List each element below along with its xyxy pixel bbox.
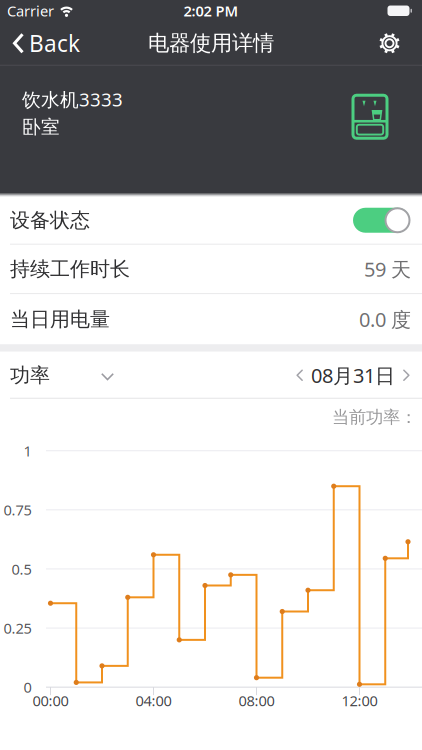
staticText: 0.5	[11, 559, 31, 579]
staticText: 1	[23, 441, 31, 460]
staticText: 12:00	[341, 691, 377, 710]
staticText: 0.25	[3, 618, 31, 638]
staticText: 持续工作时长	[10, 257, 130, 281]
staticText: 59 天	[364, 256, 411, 282]
staticText: 2:02 PM	[183, 1, 238, 20]
staticText: 00:00	[32, 691, 68, 710]
staticText: 电器使用详情	[148, 30, 274, 56]
button[interactable]: 选择数据类型	[10, 363, 114, 388]
staticText: 0.75	[3, 500, 31, 520]
staticText: 0	[23, 677, 31, 697]
button[interactable]: Back	[13, 28, 80, 58]
staticText: 设备状态	[10, 208, 90, 233]
staticText: 04:00	[135, 691, 171, 710]
staticText: 卧室	[22, 115, 60, 138]
button[interactable]: 选择日期	[306, 362, 400, 389]
staticText: 08月31日	[311, 362, 395, 389]
button[interactable]: 设备状态开关	[353, 208, 410, 233]
staticText: 饮水机3333	[22, 87, 123, 112]
staticText: 当日用电量	[10, 307, 110, 332]
button[interactable]: 后一天	[400, 366, 412, 384]
button[interactable]: 前一天	[294, 366, 306, 384]
button[interactable]: Settings	[378, 32, 401, 55]
staticText: 08:00	[238, 691, 274, 710]
staticText: 当前功率：	[332, 407, 417, 428]
staticText: 功率	[10, 363, 50, 388]
staticText: Back	[29, 28, 80, 58]
staticText: Carrier	[7, 1, 54, 20]
staticText: 0.0 度	[359, 306, 411, 333]
